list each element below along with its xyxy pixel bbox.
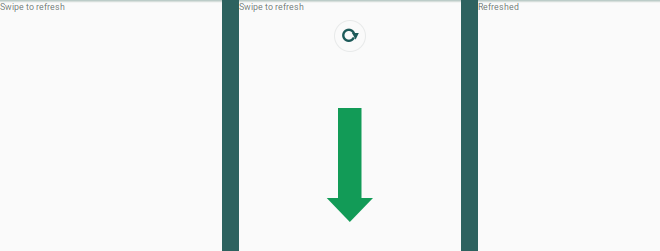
staticText: Refreshed — [478, 2, 519, 12]
staticText: Swipe to refresh — [239, 2, 304, 12]
staticText: Swipe to refresh — [0, 2, 65, 12]
